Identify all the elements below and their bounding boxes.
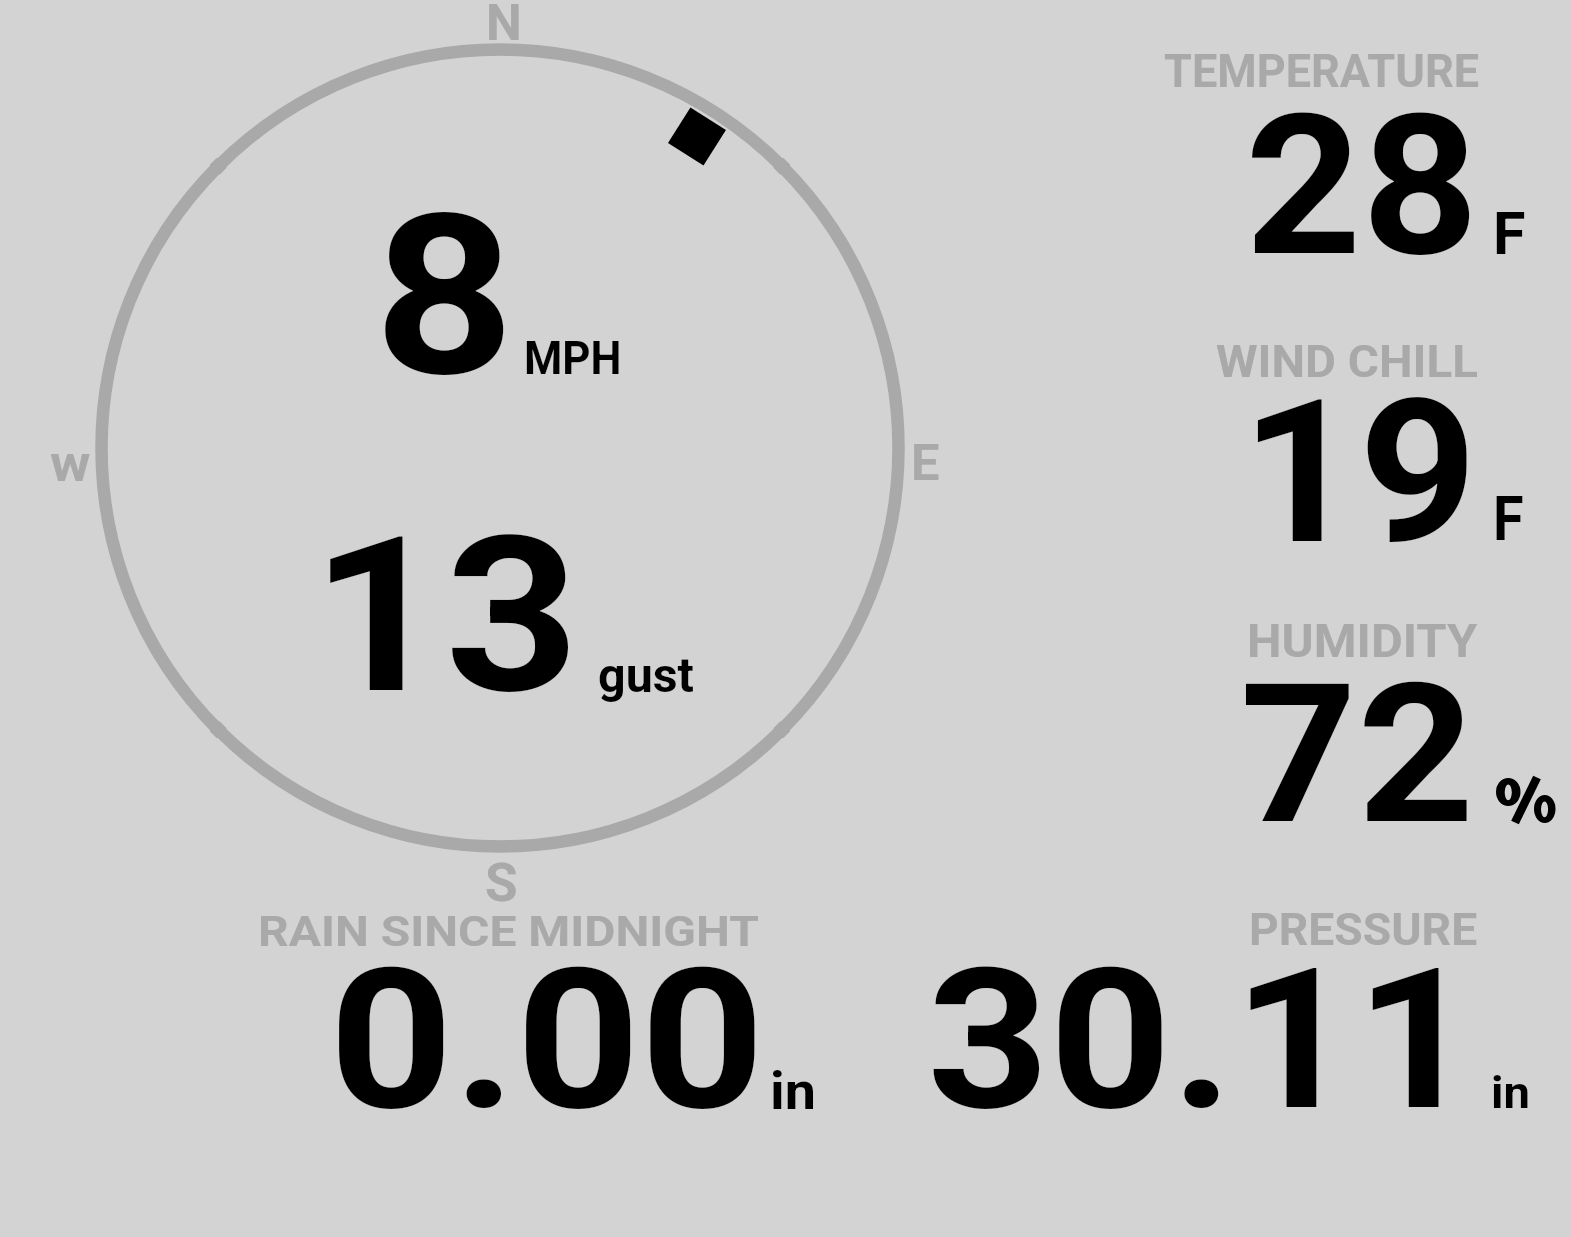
staticText: in — [770, 1061, 816, 1121]
button[interactable]: Wind chill 19 F — [1100, 320, 1571, 555]
button[interactable]: Temperature 28 F — [1100, 40, 1571, 270]
staticText: MPH — [524, 331, 622, 385]
staticText: F — [1493, 199, 1526, 268]
staticText: 72 — [1240, 642, 1475, 868]
staticText: 28 — [1245, 72, 1479, 301]
staticText: F — [1493, 483, 1524, 556]
staticText: 13 — [311, 490, 579, 743]
staticText: gust — [598, 648, 694, 704]
staticText: in — [1491, 1066, 1530, 1119]
staticText: HUMIDITY — [1247, 615, 1478, 669]
button[interactable]: Pressure 30.11 in — [880, 900, 1571, 1125]
staticText: 8 — [374, 166, 514, 427]
staticText: E — [911, 433, 940, 492]
staticText: RAIN SINCE MIDNIGHT — [258, 907, 759, 957]
staticText: w — [50, 433, 91, 493]
staticText: S — [485, 852, 518, 914]
staticText: N — [486, 0, 522, 52]
button[interactable]: Wind 8 MPH gusting 13 — [100, 48, 900, 848]
staticText: 19 — [1241, 357, 1478, 589]
staticText: TEMPERATURE — [1164, 45, 1479, 99]
staticText: WIND CHILL — [1216, 336, 1479, 387]
button[interactable]: Rain since midnight 0.00 in — [220, 900, 840, 1125]
staticText: 30.11 — [927, 927, 1478, 1155]
staticText: 0.00 — [329, 927, 765, 1155]
staticText: PRESSURE — [1249, 904, 1478, 955]
button[interactable]: Humidity 72 % — [1100, 600, 1571, 835]
